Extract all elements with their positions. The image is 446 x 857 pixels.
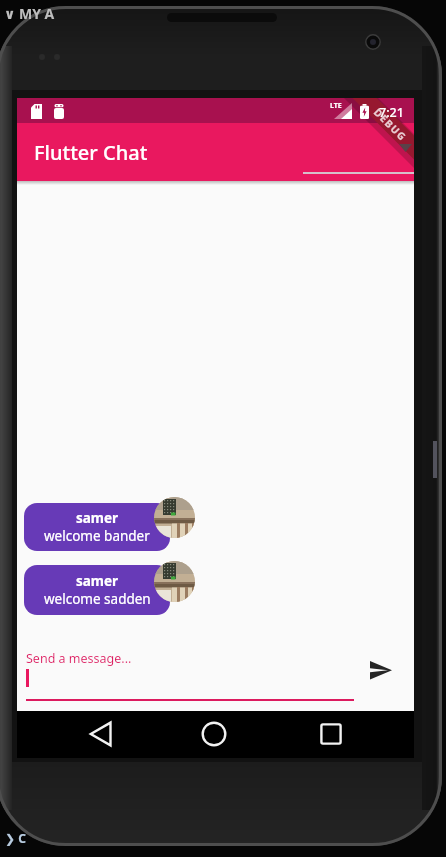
staticText: ∨ MY A [4, 4, 55, 23]
staticText: welcome bander [44, 527, 150, 545]
button[interactable]: samer [24, 503, 170, 551]
staticText: Send a message... [26, 650, 132, 667]
staticText: ❯ C [5, 830, 26, 846]
staticText: Flutter Chat [34, 139, 148, 166]
staticText: LTE [330, 101, 342, 111]
staticText: welcome sadden [44, 590, 151, 608]
button[interactable]: samer [24, 565, 170, 615]
staticText: samer [76, 509, 119, 527]
staticText: samer [76, 572, 119, 590]
button[interactable] [320, 723, 342, 745]
staticText: 7:21 [379, 104, 404, 121]
button[interactable] [89, 721, 112, 747]
button[interactable] [370, 661, 392, 680]
button[interactable] [202, 722, 226, 746]
staticText: DEBUG [371, 105, 410, 144]
